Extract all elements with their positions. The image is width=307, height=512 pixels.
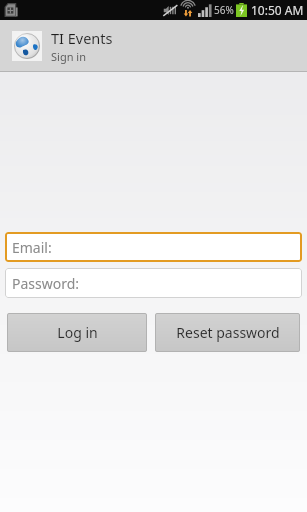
staticText: Password: [12, 274, 80, 293]
staticText: 10:50 AM [251, 2, 304, 18]
staticText: Sign in [51, 49, 86, 64]
staticText: 56% [214, 3, 234, 17]
staticText: Reset password [176, 323, 280, 342]
button[interactable]: Reset password [155, 313, 300, 352]
staticText: Log in [57, 323, 98, 342]
button[interactable]: TI Events [0, 20, 307, 71]
button[interactable]: Email: [5, 232, 302, 262]
button[interactable]: Log in [7, 313, 147, 352]
staticText: TI Events [51, 28, 113, 48]
button[interactable]: Password: [5, 268, 302, 298]
staticText: Email: [12, 238, 52, 257]
